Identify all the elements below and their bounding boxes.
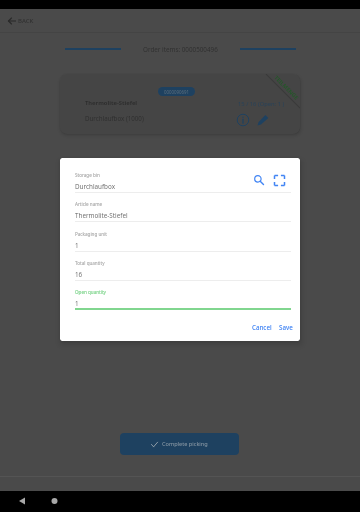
staticText: Open quantity — [75, 289, 106, 295]
button[interactable]: Total quantity — [60, 252, 300, 281]
staticText: 0000090691 — [164, 89, 190, 95]
button[interactable]: Open quantity — [60, 281, 300, 310]
staticText: Thermolite-Stiefel — [75, 211, 128, 220]
staticText: Durchlaufbox — [75, 182, 115, 191]
staticText: 1 — [75, 299, 79, 308]
staticText: BACK — [18, 17, 34, 25]
staticText: Cancel — [252, 323, 272, 331]
staticText: Durchlaufbox (1000) — [85, 114, 144, 122]
button[interactable]: Complete picking — [120, 433, 239, 455]
staticText: Save — [279, 323, 293, 331]
staticText: TEILMENGE — [273, 74, 300, 101]
staticText: Order items: 0000500496 — [143, 45, 218, 54]
staticText: 15 / 16 (Open: 1 ) — [238, 100, 285, 108]
button[interactable]: Save — [276, 321, 296, 333]
button[interactable]: Info — [236, 113, 250, 127]
button[interactable]: Edit — [256, 113, 270, 127]
button[interactable]: Article name — [60, 193, 300, 222]
button[interactable]: Packaging unit — [60, 222, 300, 252]
staticText: Thermolite-Stiefel — [85, 99, 138, 107]
button[interactable]: Search — [253, 174, 267, 188]
staticText: Article name — [75, 201, 103, 207]
button[interactable]: Cancel — [249, 321, 275, 333]
staticText: Complete picking — [162, 440, 208, 448]
staticText: 1 — [75, 241, 79, 250]
staticText: Storage bin — [75, 172, 100, 178]
button[interactable]: Scan — [273, 174, 286, 187]
button[interactable]: Storage bin — [60, 158, 300, 193]
button[interactable]: TEILMENGE — [60, 74, 300, 134]
button[interactable]: Home — [48, 495, 60, 507]
button[interactable]: Back — [16, 495, 28, 507]
staticText: 16 — [75, 270, 83, 279]
staticText: Total quantity — [75, 260, 105, 266]
staticText: Packaging unit — [75, 231, 107, 237]
